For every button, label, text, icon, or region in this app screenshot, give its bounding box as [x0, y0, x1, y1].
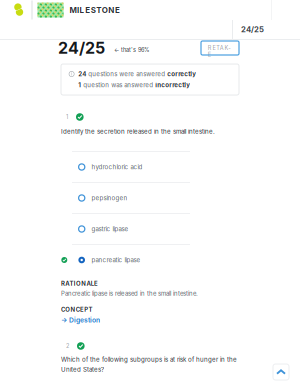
button[interactable]: hydrochloric acid: [0, 152, 300, 182]
staticText: pepsinogen: [91, 194, 127, 202]
button[interactable]: gastric lipase: [0, 214, 300, 244]
staticText: 24/25: [58, 38, 105, 58]
staticText: question was answered: [81, 81, 155, 89]
button[interactable]: Scroll to top: [273, 364, 289, 380]
staticText: correctly: [167, 70, 196, 78]
button[interactable]: pepsinogen: [0, 183, 300, 213]
staticText: gastric lipase: [91, 225, 128, 233]
staticText: RETAKE: [208, 45, 232, 51]
button[interactable]: RETAKE: [201, 41, 239, 55]
staticText: 2: [66, 343, 69, 349]
staticText: → Digestion: [61, 316, 100, 324]
staticText: Identify the secretion released in the s…: [61, 128, 215, 135]
button[interactable]: pancreatic lipase: [0, 245, 300, 275]
staticText: i: [71, 71, 72, 77]
staticText: ← that's 96%: [114, 47, 149, 53]
staticText: CONCEPT: [61, 306, 92, 313]
staticText: RATIONALE: [61, 280, 98, 287]
staticText: MILESTONE: [69, 5, 120, 15]
staticText: hydrochloric acid: [91, 163, 142, 171]
staticText: Pancreatic lipase is released in the sma…: [61, 290, 198, 297]
staticText: incorrectly: [155, 81, 190, 89]
staticText: 24: [78, 70, 86, 78]
button[interactable]: → Digestion: [61, 316, 100, 324]
staticText: 24/25: [241, 25, 264, 34]
staticText: questions were answered: [86, 70, 167, 78]
staticText: 1: [78, 81, 81, 89]
staticText: 1: [66, 114, 68, 120]
staticText: United States?: [61, 366, 104, 373]
staticText: Which of the following subgroups is at r…: [61, 356, 237, 363]
staticText: pancreatic lipase: [91, 256, 140, 264]
